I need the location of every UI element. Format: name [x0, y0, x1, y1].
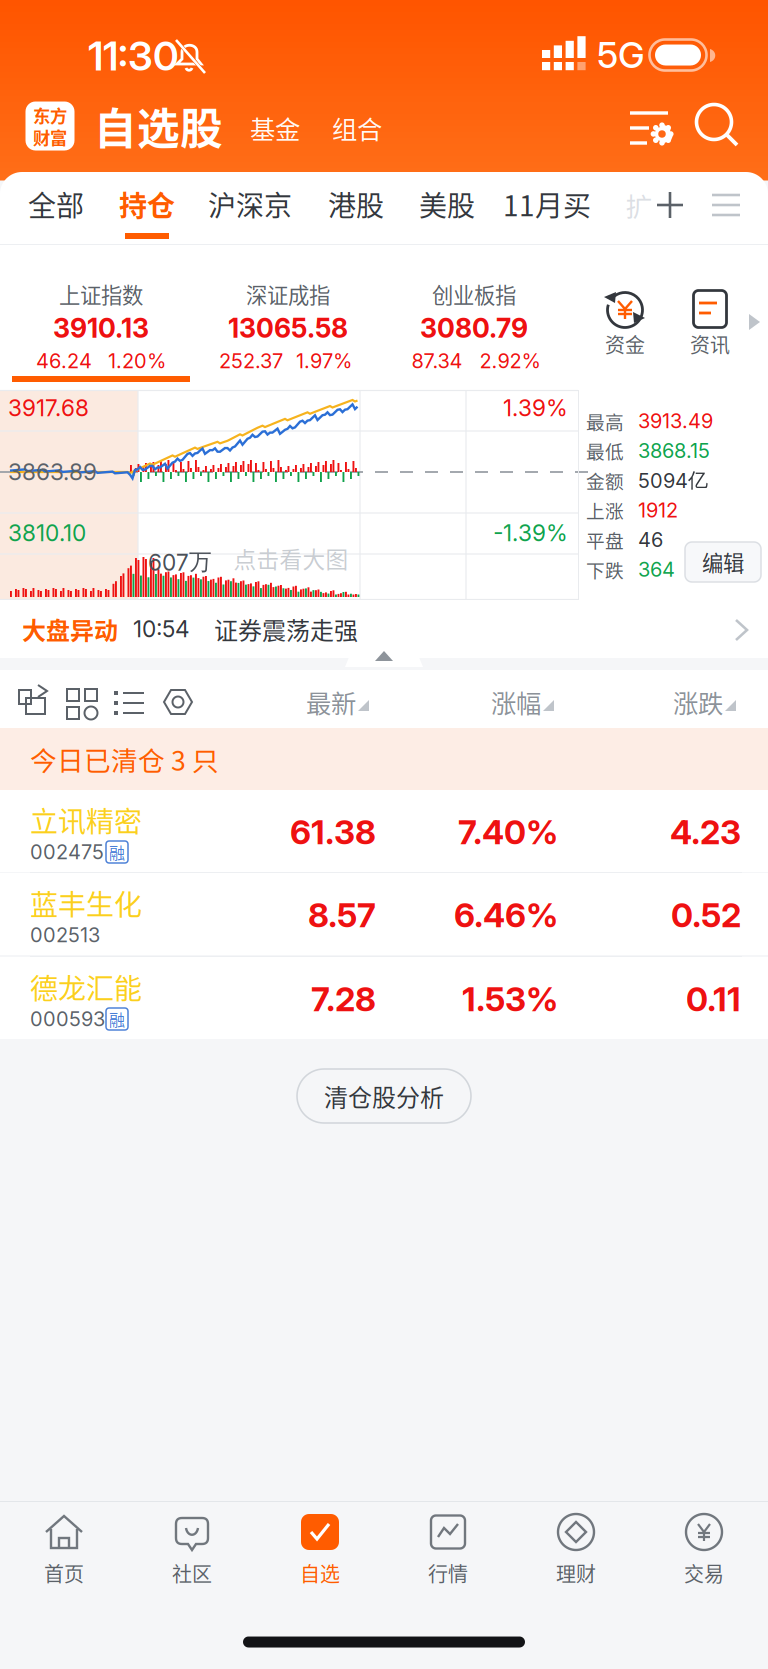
staticText: 1.39% [503, 394, 568, 422]
button[interactable]: 排序设置 [155, 680, 201, 724]
staticText: 德龙汇能 [30, 967, 142, 1007]
staticText: 金额 [586, 467, 624, 494]
staticText: 上涨 [586, 497, 624, 524]
staticText: 基金 [250, 110, 300, 146]
button[interactable]: 创业板指 [381, 273, 567, 377]
staticText: 11月买 [503, 184, 591, 224]
button[interactable]: 列表视图 [107, 680, 153, 724]
staticText: 涨跌 [673, 684, 723, 720]
staticText: 大盘异动 [22, 612, 118, 646]
staticText: 5G [597, 33, 645, 77]
button[interactable]: 资讯 [677, 281, 743, 365]
button[interactable]: 涨跌 [637, 670, 743, 734]
staticText: 3868.15 [638, 439, 710, 463]
staticText: 自选股 [94, 95, 223, 157]
button[interactable]: 涨幅 [455, 670, 561, 734]
staticText: 港股 [328, 184, 384, 224]
button[interactable]: 自选 [256, 1501, 384, 1601]
staticText: 行情 [428, 1558, 468, 1587]
staticText: 清仓股分析 [324, 1079, 444, 1113]
button[interactable]: 立讯精密 [0, 790, 768, 872]
button[interactable]: 11月买 [491, 174, 603, 234]
button[interactable]: 沪深京 [192, 174, 308, 234]
button[interactable]: 上证指数 [8, 273, 194, 377]
button[interactable]: 网格视图 [59, 680, 105, 724]
staticText: 3917.68 [8, 394, 89, 422]
staticText: 沪深京 [208, 184, 292, 224]
staticText: 蓝丰生化 [30, 883, 142, 923]
staticText: 4.23 [670, 812, 741, 852]
button[interactable]: 美股 [403, 174, 491, 234]
staticText: 最高 [586, 407, 624, 434]
button[interactable]: 社区 [128, 1501, 256, 1601]
button[interactable]: 理财 [512, 1501, 640, 1601]
button[interactable]: 德龙汇能 [0, 957, 768, 1039]
staticText: 下跌 [586, 556, 624, 583]
staticText: 002475 [30, 840, 104, 864]
staticText: 5094亿 [638, 468, 708, 493]
staticText: 首页 [44, 1558, 84, 1587]
staticText: 自选 [300, 1558, 340, 1587]
staticText: 3910.13 [53, 312, 149, 344]
button[interactable]: 最新 [270, 670, 376, 734]
staticText: 46.24 [36, 349, 92, 373]
staticText: 000593 [30, 1007, 105, 1031]
button[interactable]: 深证成指 [195, 273, 381, 377]
staticText: 交易 [684, 1558, 724, 1587]
staticText: 美股 [419, 184, 475, 224]
staticText: 3863.89 [8, 458, 97, 486]
button[interactable]: 添加自选 [647, 182, 693, 228]
staticText: 证券震荡走强 [214, 612, 358, 646]
staticText: 深证成指 [246, 279, 330, 309]
staticText: 财富 [33, 124, 67, 150]
button[interactable]: 首页 [0, 1501, 128, 1601]
staticText: 上证指数 [59, 279, 143, 309]
staticText: 平盘 [586, 526, 624, 553]
button[interactable]: 编辑 [685, 542, 761, 582]
staticText: 全部 [28, 184, 84, 224]
button[interactable]: 筛选设置 [624, 103, 680, 153]
staticText: 11:30 [88, 32, 179, 80]
staticText: 融 [109, 1007, 125, 1031]
staticText: 今日已清仓 3 只 [30, 740, 219, 778]
button[interactable]: 蓝丰生化 [0, 873, 768, 955]
staticText: 10:54 [133, 615, 190, 643]
staticText: 87.34 [411, 349, 462, 373]
staticText: 61.38 [290, 812, 376, 852]
staticText: 立讯精密 [30, 800, 142, 840]
button[interactable]: 大盘异动 [0, 600, 768, 658]
staticText: 8.57 [308, 895, 376, 935]
button[interactable]: 搜索 [692, 102, 744, 154]
staticText: -1.39% [493, 519, 568, 547]
staticText: 13065.58 [228, 312, 348, 344]
staticText: 3810.10 [8, 519, 86, 547]
staticText: 资金 [605, 329, 645, 358]
button[interactable]: 基金 [239, 100, 311, 156]
staticText: 607万 [148, 548, 212, 576]
button[interactable]: 切换视图 [11, 680, 57, 724]
button[interactable]: 组合 [321, 100, 393, 156]
button[interactable]: 清仓股分析 [297, 1069, 471, 1123]
button[interactable]: 资金 [592, 281, 658, 365]
staticText: 3913.49 [638, 409, 713, 433]
staticText: 东方 [33, 102, 67, 127]
staticText: 002513 [30, 923, 100, 947]
button[interactable]: 更多 [703, 182, 749, 228]
staticText: 最新 [306, 684, 356, 720]
staticText: 1.53% [462, 979, 558, 1019]
button[interactable]: 持仓 [103, 174, 191, 234]
staticText: 扩 [625, 186, 652, 224]
staticText: 7.28 [311, 979, 376, 1019]
staticText: 社区 [172, 1558, 212, 1587]
staticText: 融 [109, 840, 125, 864]
staticText: 7.40% [458, 812, 558, 852]
staticText: 理财 [556, 1558, 596, 1587]
button[interactable]: 交易 [640, 1501, 768, 1601]
button[interactable]: 收起行情 [345, 643, 423, 667]
staticText: 涨幅 [491, 684, 541, 720]
button[interactable]: 行情 [384, 1501, 512, 1601]
button[interactable]: 港股 [312, 174, 400, 234]
staticText: 46 [638, 528, 663, 552]
staticText: 最低 [586, 437, 624, 464]
button[interactable]: 全部 [11, 174, 101, 234]
